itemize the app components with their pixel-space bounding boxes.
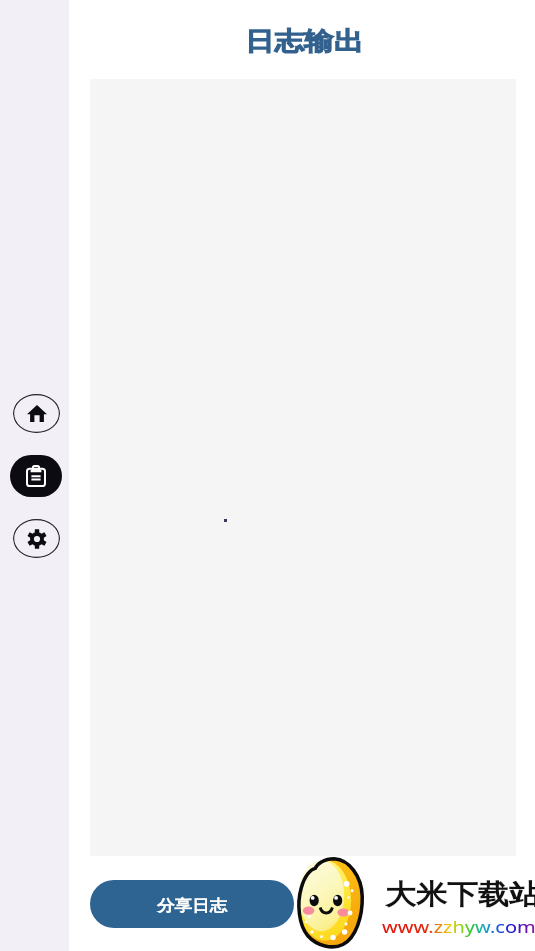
button[interactable]: Settings [13, 519, 60, 558]
staticText: www.zzhyw.com [382, 916, 535, 938]
staticText: 大米下载站 [385, 877, 535, 909]
staticText: 日志输出 [245, 26, 363, 56]
button[interactable]: 分享日志 [90, 880, 294, 928]
button[interactable]: Logs [10, 455, 62, 497]
staticText: 分享日志 [157, 896, 227, 915]
button[interactable]: Home [13, 394, 60, 433]
